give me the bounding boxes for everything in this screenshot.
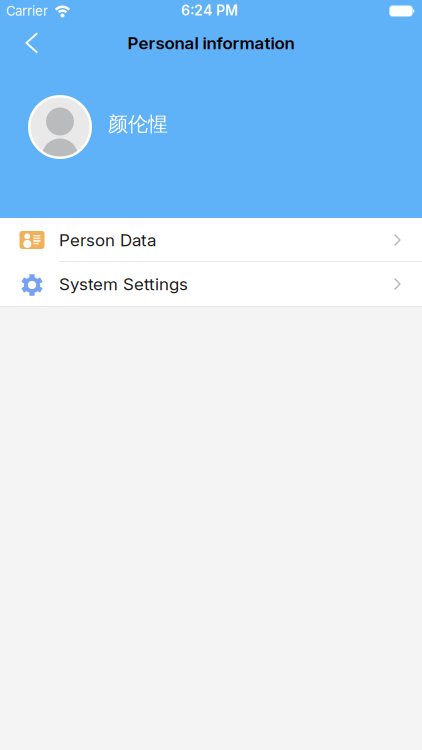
staticText: Carrier	[6, 3, 48, 19]
staticText: 颜伦惺	[108, 112, 168, 136]
button[interactable]: System Settings	[0, 262, 422, 306]
staticText: Personal information	[127, 33, 294, 53]
staticText: System Settings	[59, 274, 188, 294]
staticText: 6:24 PM	[181, 2, 238, 19]
button[interactable]: Back	[0, 22, 54, 66]
staticText: Person Data	[59, 230, 156, 250]
button[interactable]: Person Data	[0, 218, 422, 262]
